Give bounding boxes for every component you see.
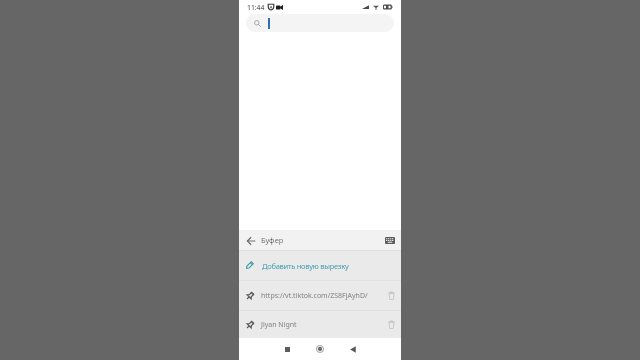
button[interactable]: Delete <box>388 291 395 300</box>
button[interactable]: Delete <box>388 320 395 329</box>
staticText: Jiyan Nignt <box>261 320 384 330</box>
button[interactable]: Jiyan Nignt <box>239 311 401 338</box>
staticText: 11:44 <box>247 3 265 12</box>
button[interactable]: Back <box>239 230 401 250</box>
staticText: https://vt.tiktok.com/ZS8FjAyhD/ <box>261 291 384 301</box>
button[interactable]: Home <box>309 338 331 360</box>
button[interactable]: https://vt.tiktok.com/ZS8FjAyhD/ <box>239 281 401 310</box>
other: Back <box>247 237 255 245</box>
button[interactable]: Добавить новую вырезку <box>239 251 401 280</box>
button[interactable]: Back <box>342 338 364 360</box>
button[interactable] <box>246 14 394 32</box>
other: Keyboard <box>385 237 395 244</box>
button[interactable]: Recent apps <box>276 338 298 360</box>
staticText: Буфер <box>261 235 284 245</box>
staticText: Добавить новую вырезку <box>262 261 349 271</box>
